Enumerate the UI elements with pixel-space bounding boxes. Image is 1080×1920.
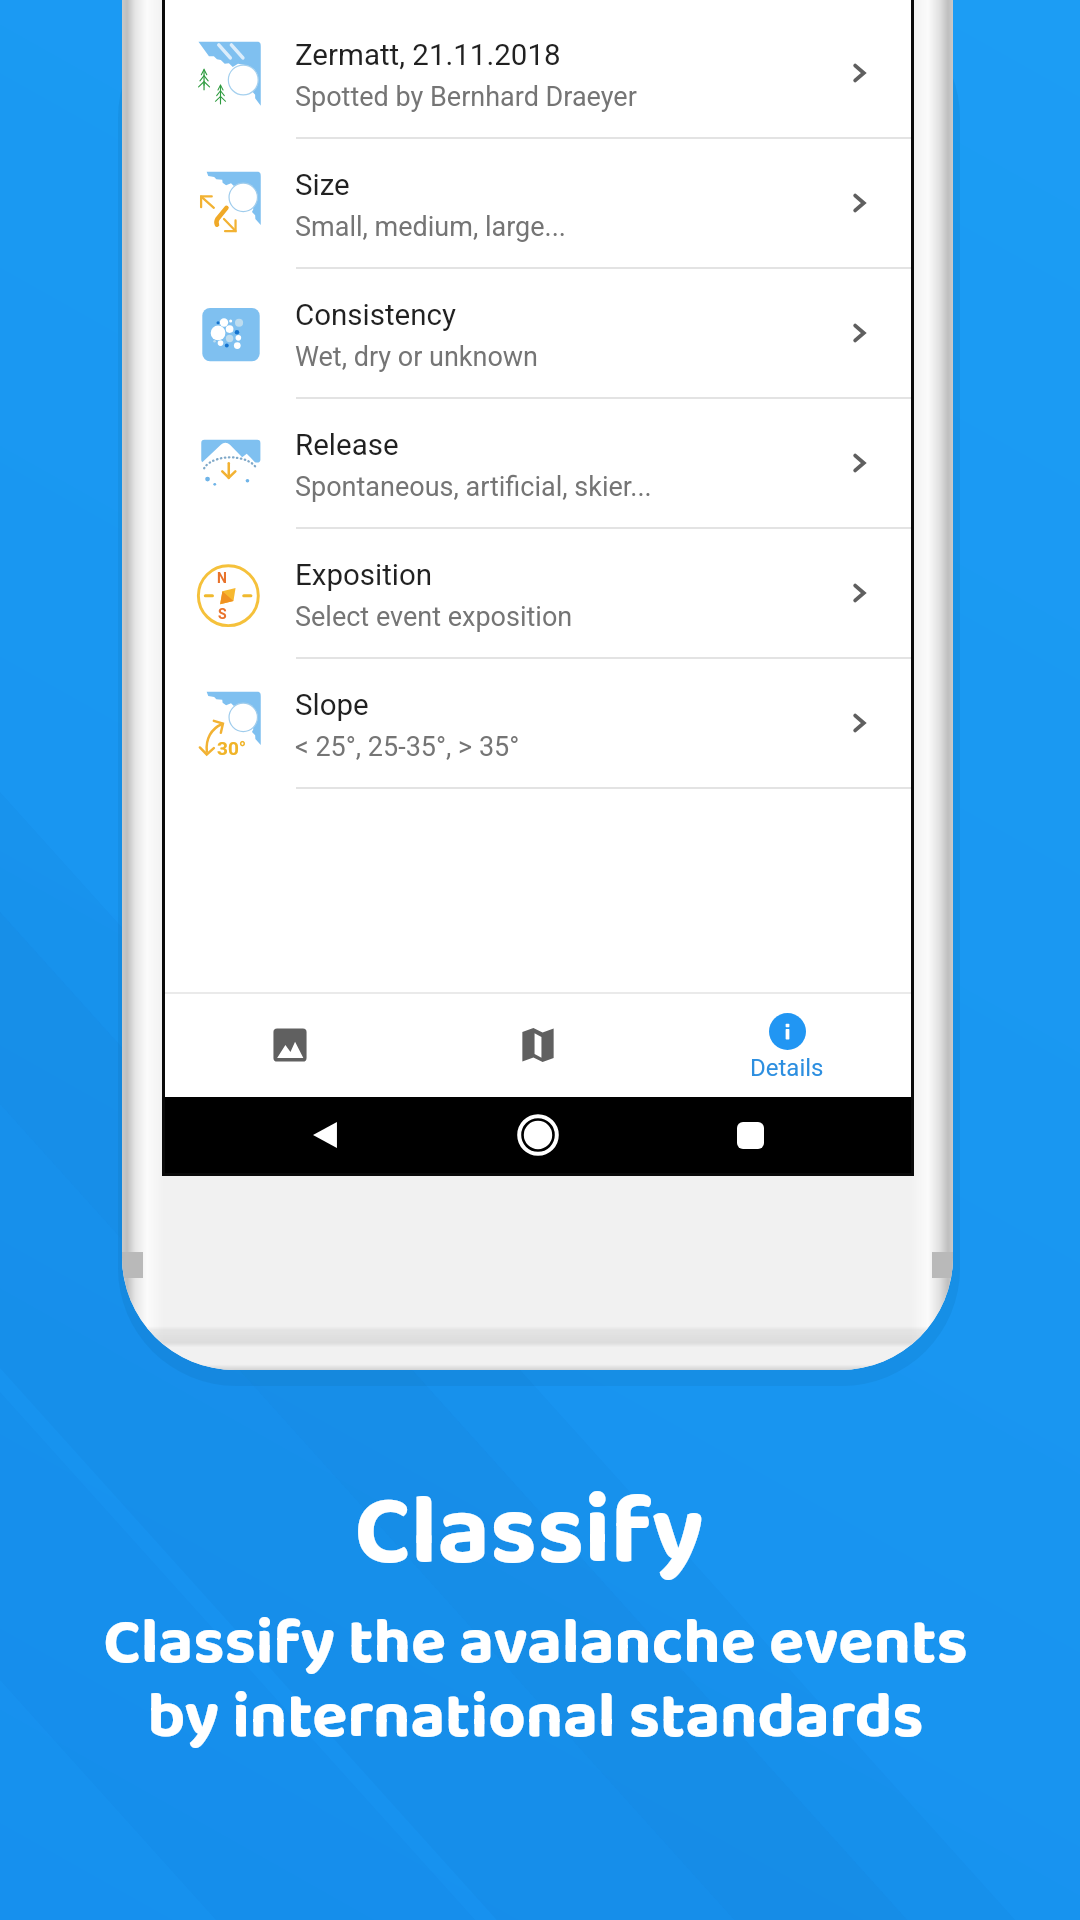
- button[interactable]: Home: [498, 1097, 578, 1173]
- staticText: N: [217, 570, 227, 586]
- staticText: S: [218, 606, 227, 622]
- staticText: Release: [295, 428, 399, 463]
- staticText: Classify: [354, 1455, 704, 1612]
- button[interactable]: Consistency: [165, 269, 911, 399]
- staticText: Wet, dry or unknown: [295, 341, 539, 373]
- staticText: < 25°, 25-35°, > 35°: [295, 731, 520, 763]
- button[interactable]: N: [165, 529, 911, 659]
- staticText: Zermatt, 21.11.2018: [295, 38, 561, 73]
- staticText: Size: [295, 168, 350, 203]
- staticText: Details: [750, 1054, 824, 1082]
- button[interactable]: 30°: [165, 659, 911, 789]
- staticText: Spontaneous, artificial, skier...: [295, 471, 652, 503]
- staticText: Small, medium, large...: [295, 211, 566, 243]
- staticText: Select event exposition: [295, 601, 573, 633]
- staticText: 30°: [217, 737, 247, 759]
- button[interactable]: Release: [165, 399, 911, 529]
- staticText: Classify the avalanche events by interna…: [103, 1592, 968, 1770]
- button[interactable]: Size: [165, 139, 911, 269]
- button[interactable]: Photos: [165, 994, 413, 1097]
- button[interactable]: Map: [413, 994, 662, 1097]
- staticText: Consistency: [295, 298, 456, 333]
- staticText: Slope: [295, 688, 369, 723]
- button[interactable]: Back: [286, 1097, 366, 1173]
- staticText: Exposition: [295, 558, 433, 593]
- button[interactable]: Recent apps: [710, 1097, 790, 1173]
- button[interactable]: Details: [662, 994, 911, 1097]
- staticText: Spotted by Bernhard Draeyer: [295, 81, 637, 113]
- button[interactable]: Zermatt, 21.11.2018: [165, 9, 911, 139]
